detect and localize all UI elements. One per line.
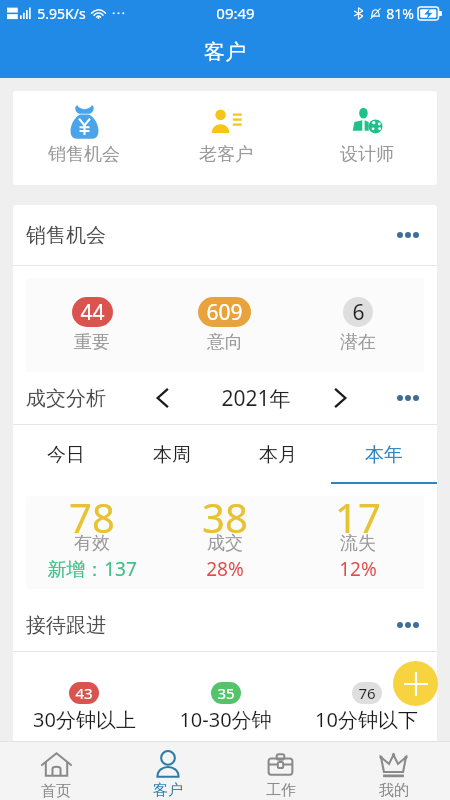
staticText: 12% [339, 556, 377, 582]
button[interactable]: More options [391, 224, 424, 246]
staticText: 今日 [47, 443, 85, 467]
button[interactable]: 销售机会 [26, 205, 424, 265]
staticText: 成交 [207, 532, 243, 555]
button[interactable]: 我的 [337, 742, 450, 800]
staticText: 意向 [207, 331, 243, 354]
staticText: 09:49 [216, 3, 255, 23]
staticText: 78 [69, 496, 115, 538]
button[interactable]: 6 [291, 297, 424, 354]
button[interactable]: 今日 [13, 425, 119, 484]
button[interactable]: More options [391, 387, 424, 409]
staticText: 17 [335, 496, 381, 538]
staticText: 客户 [204, 39, 246, 65]
staticText: 本年 [365, 443, 403, 467]
staticText: 44 [80, 298, 105, 327]
staticText: 43 [75, 683, 93, 703]
staticText: 609 [206, 298, 243, 327]
button[interactable]: 78 [26, 496, 158, 589]
staticText: 有效 [74, 532, 110, 555]
staticText: 流失 [340, 532, 376, 555]
button[interactable]: 本周 [119, 425, 225, 484]
staticText: 首页 [41, 782, 71, 800]
button[interactable]: Previous year [152, 383, 174, 413]
button[interactable]: More options [391, 614, 424, 636]
staticText: 5.95K/s [37, 4, 86, 23]
button[interactable]: 609 [158, 297, 291, 354]
staticText: 重要 [74, 331, 110, 354]
button[interactable]: 38 [158, 496, 291, 589]
button[interactable]: 销售机会 [13, 91, 155, 185]
staticText: 潜在 [340, 331, 376, 354]
button[interactable]: Add [393, 661, 438, 706]
button[interactable]: 设计师 [296, 91, 437, 185]
staticText: 设计师 [340, 143, 394, 166]
staticText: 成交分析 [26, 386, 106, 411]
staticText: 我的 [379, 781, 409, 800]
staticText: 工作 [266, 781, 296, 800]
staticText: 10-30分钟 [179, 706, 272, 733]
staticText: 81% [386, 4, 414, 23]
staticText: 客户 [153, 781, 183, 800]
staticText: 本周 [153, 443, 191, 467]
staticText: 销售机会 [26, 223, 106, 248]
button[interactable]: 接待跟进 [26, 599, 424, 651]
button[interactable]: 17 [291, 496, 424, 589]
button[interactable]: 35 [155, 682, 296, 733]
button[interactable]: 本年 [331, 425, 437, 484]
staticText: 老客户 [199, 143, 253, 166]
button[interactable]: Next year [329, 383, 351, 413]
button[interactable]: 本月 [225, 425, 331, 484]
staticText: 38 [202, 496, 248, 538]
staticText: 10分钟以下 [315, 706, 418, 733]
staticText: 本月 [259, 443, 297, 467]
staticText: 新增：137 [47, 556, 137, 582]
staticText: 2021年 [221, 384, 291, 413]
button[interactable]: 老客户 [155, 91, 296, 185]
staticText: 接待跟进 [26, 613, 106, 638]
staticText: 销售机会 [48, 143, 120, 166]
staticText: 28% [206, 556, 244, 582]
button[interactable]: 客户 [112, 742, 224, 800]
button[interactable]: 44 [26, 297, 158, 354]
staticText: 30分钟以上 [33, 706, 136, 733]
staticText: 6 [352, 298, 365, 327]
staticText: 76 [358, 683, 376, 703]
button[interactable]: 76 [296, 682, 437, 733]
button[interactable]: 首页 [0, 742, 112, 800]
button[interactable]: 43 [13, 682, 155, 733]
button[interactable]: 工作 [224, 742, 337, 800]
staticText: 35 [217, 683, 235, 703]
